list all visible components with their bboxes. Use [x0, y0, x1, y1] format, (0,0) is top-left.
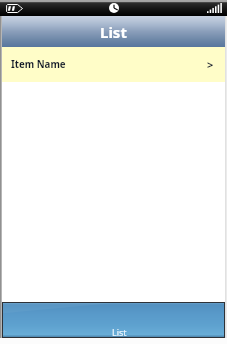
staticText: Item Name — [11, 58, 66, 71]
button[interactable]: Item Name — [0, 47, 227, 82]
staticText: > — [207, 57, 214, 72]
button[interactable]: Battery status — [4, 1, 25, 15]
staticText: List — [112, 326, 127, 337]
button[interactable]: List — [0, 16, 227, 47]
staticText: List — [100, 22, 127, 42]
button[interactable]: List — [3, 303, 224, 337]
button[interactable]: Signal strength — [205, 1, 225, 15]
button[interactable]: Clock — [106, 0, 122, 16]
